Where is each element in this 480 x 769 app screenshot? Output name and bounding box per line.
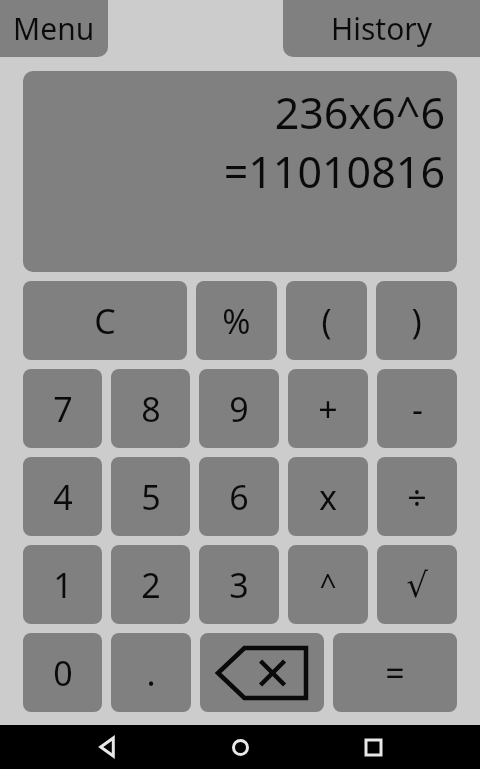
button[interactable]: ^ [288,545,368,624]
button[interactable]: 9 [199,369,279,448]
staticText: 9 [229,386,249,432]
button[interactable]: ÷ [377,457,457,536]
staticText: = [385,650,405,696]
button[interactable]: 2 [111,545,190,624]
staticText: =11010816 [223,142,445,201]
button[interactable]: % [196,281,277,360]
staticText: ÷ [407,474,427,520]
button[interactable]: 0 [23,633,102,712]
button[interactable]: + [288,369,368,448]
button[interactable]: 1 [23,545,102,624]
staticText: Menu [13,8,95,49]
staticText: % [222,298,251,344]
button[interactable]: 8 [111,369,190,448]
button[interactable]: Menu [0,0,108,57]
button[interactable]: ( [286,281,367,360]
button[interactable]: Back [81,725,133,769]
button[interactable]: Backspace [200,633,324,712]
staticText: 5 [141,474,161,520]
button[interactable]: = [333,633,457,712]
staticText: 8 [141,386,161,432]
staticText: 236x6^6 [274,83,445,142]
button[interactable]: 5 [111,457,190,536]
staticText: 0 [53,650,73,696]
staticText: x [319,474,337,520]
button[interactable]: Home [214,725,266,769]
staticText: 6 [229,474,249,520]
staticText: - [412,386,423,432]
staticText: + [318,386,338,432]
button[interactable]: . [111,633,191,712]
button[interactable]: x [288,457,368,536]
staticText: 4 [53,474,73,520]
staticText: ^ [319,564,337,605]
button[interactable]: History [283,0,480,57]
button[interactable]: 7 [23,369,102,448]
button[interactable]: 3 [199,545,279,624]
button[interactable]: ) [376,281,457,360]
staticText: 1 [53,562,73,608]
button[interactable]: 4 [23,457,102,536]
button[interactable]: Recent apps [347,725,399,769]
staticText: . [146,650,156,696]
button[interactable]: C [23,281,187,360]
staticText: ( [321,298,332,344]
staticText: ) [411,298,422,344]
staticText: 2 [141,562,161,608]
staticText: √ [406,565,428,605]
staticText: History [331,8,433,49]
button[interactable]: - [377,369,457,448]
button[interactable]: 6 [199,457,279,536]
staticText: C [94,298,116,344]
staticText: 3 [229,562,249,608]
staticText: 7 [53,386,73,432]
button[interactable]: √ [377,545,457,624]
